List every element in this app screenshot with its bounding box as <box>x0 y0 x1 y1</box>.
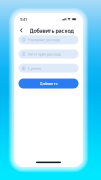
button[interactable]: Категория расхода <box>18 49 78 58</box>
staticText: Добавить расход <box>30 27 74 34</box>
button[interactable]: Back <box>18 27 25 34</box>
button[interactable]: Добавить <box>18 78 78 88</box>
staticText: Добавить <box>39 81 57 86</box>
button[interactable]: Сумма <box>18 64 78 73</box>
staticText: 9:41 <box>20 16 27 22</box>
button[interactable]: Название расхода <box>18 35 78 44</box>
staticText: Название расхода <box>28 37 60 42</box>
staticText: Категория расхода <box>28 51 61 57</box>
staticText: Сумма <box>28 65 41 71</box>
